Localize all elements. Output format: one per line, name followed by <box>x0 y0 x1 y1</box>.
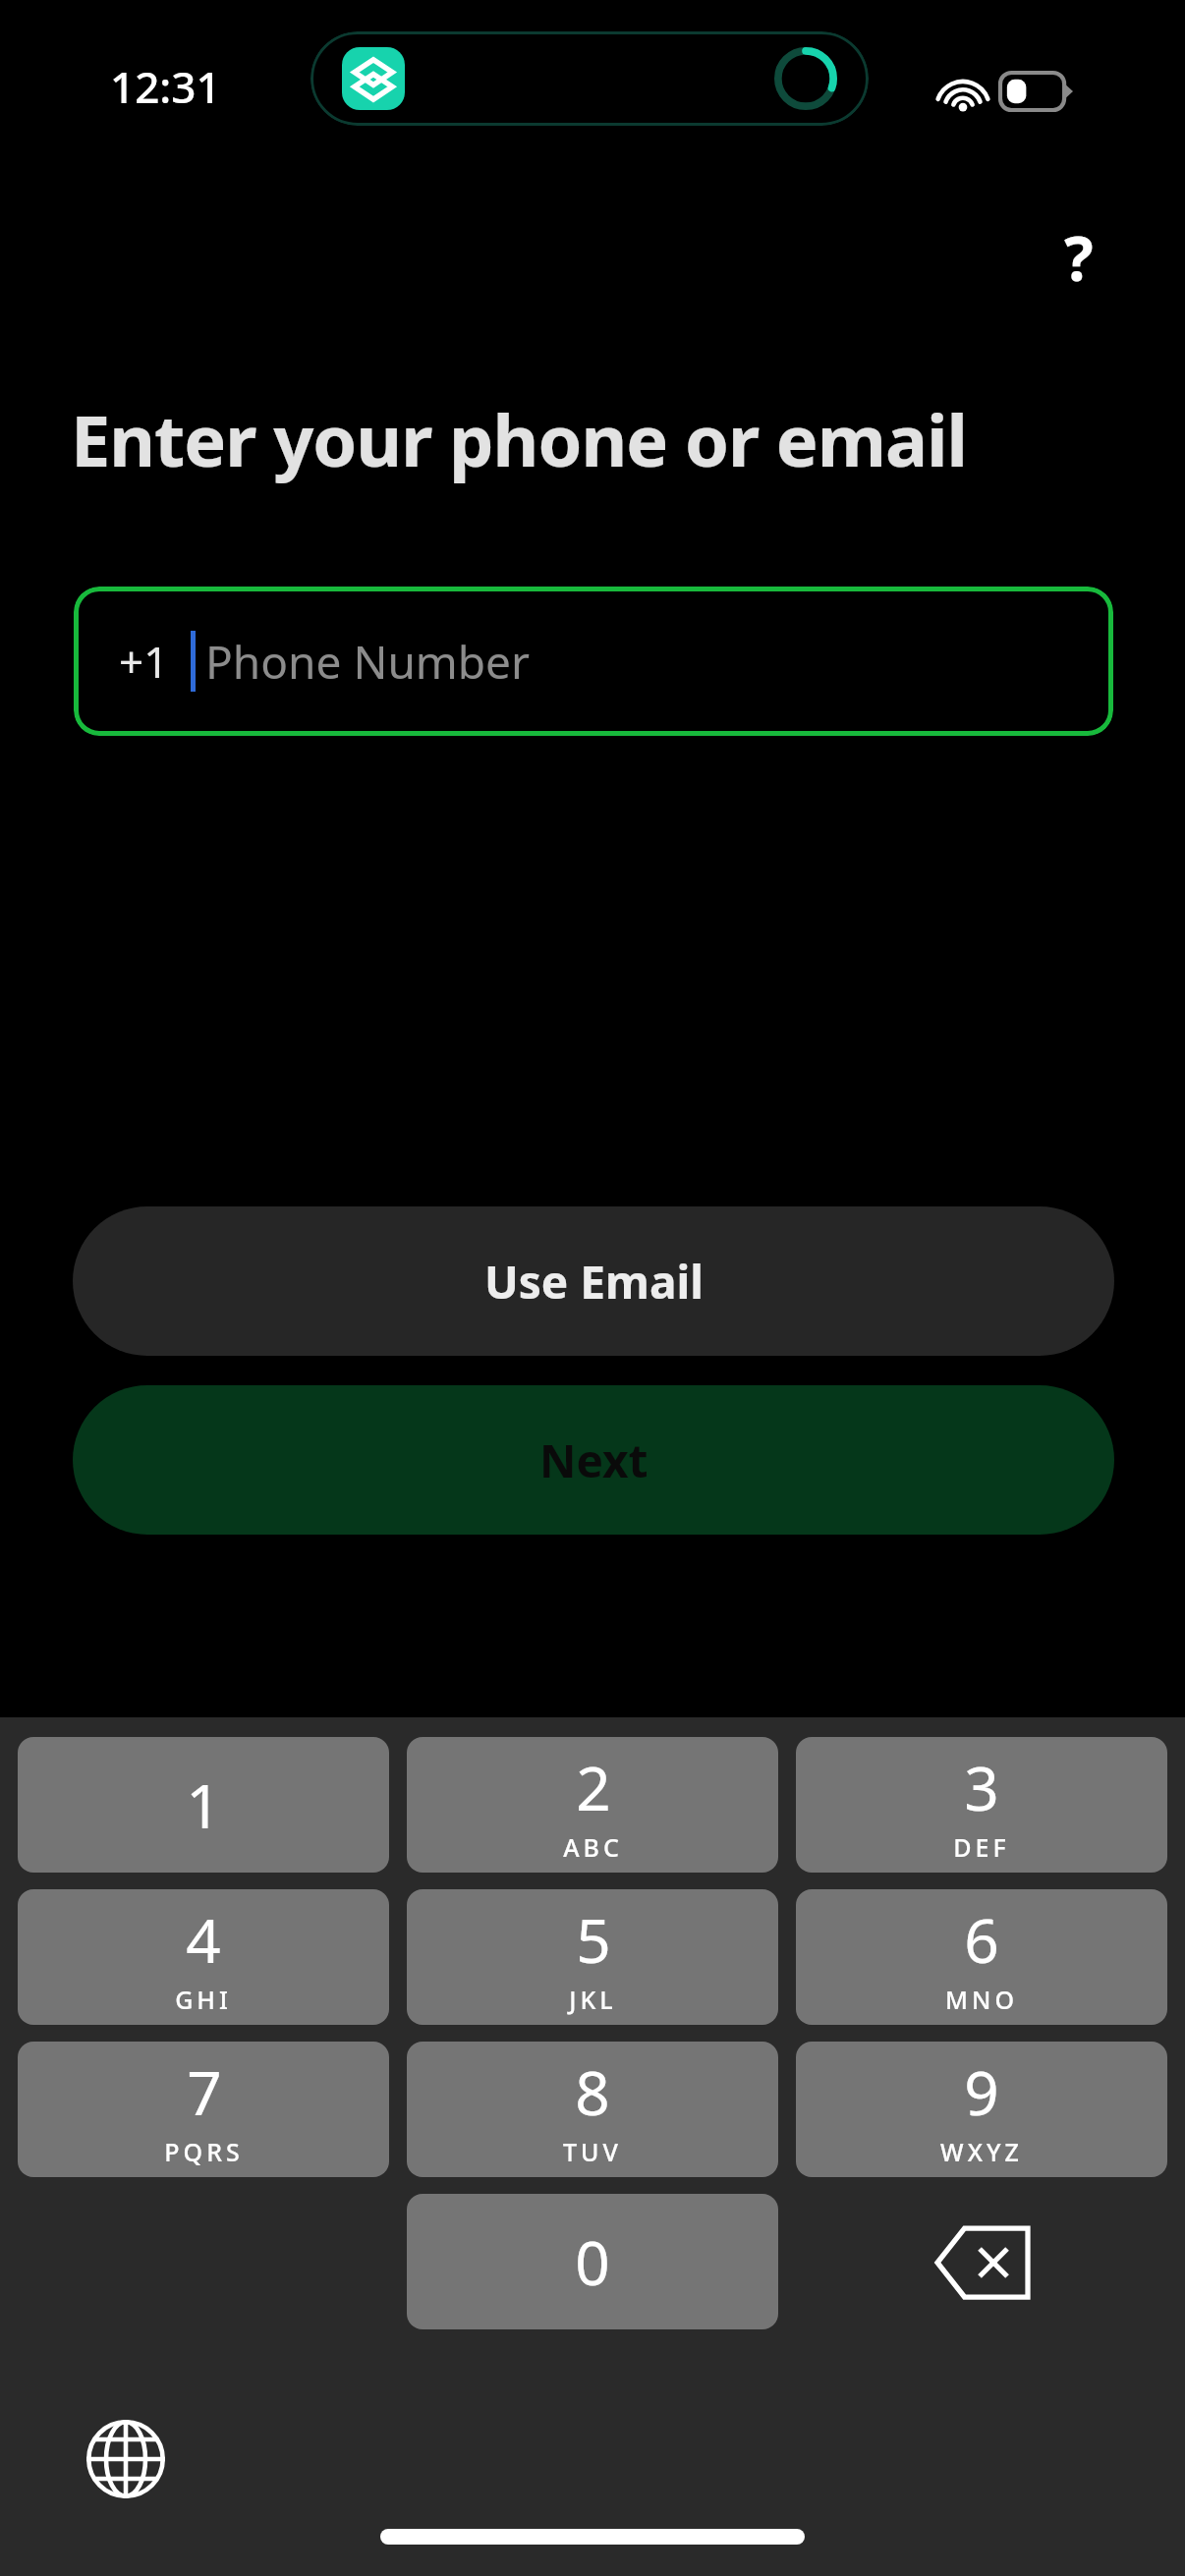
staticText: 2 <box>576 1746 611 1828</box>
button[interactable]: 8 <box>407 2042 778 2177</box>
button[interactable]: Use Email <box>73 1206 1114 1356</box>
button[interactable]: 3 <box>796 1737 1167 1873</box>
staticText: 8 <box>575 2050 610 2133</box>
staticText: 5 <box>576 1898 611 1981</box>
staticText: 7 <box>187 2050 222 2133</box>
button[interactable]: 2 <box>407 1737 778 1873</box>
staticText: DEF <box>953 1830 1010 1864</box>
staticText: ? <box>1064 216 1094 299</box>
staticText: TUV <box>563 2135 622 2168</box>
staticText: Use Email <box>484 1251 704 1313</box>
button[interactable]: 0 <box>407 2194 778 2329</box>
button[interactable]: 9 <box>796 2042 1167 2177</box>
button[interactable]: 7 <box>18 2042 389 2177</box>
staticText: JKL <box>569 1983 617 2016</box>
staticText: 6 <box>964 1898 999 1981</box>
button[interactable]: 6 <box>796 1889 1167 2025</box>
staticText: 3 <box>964 1746 999 1828</box>
staticText: Phone Number <box>205 631 531 693</box>
button[interactable]: 5 <box>407 1889 778 2025</box>
staticText: ABC <box>563 1830 623 1864</box>
staticText: Next <box>539 1429 649 1491</box>
button[interactable]: +1 <box>74 587 1113 736</box>
staticText: GHI <box>175 1983 232 2016</box>
staticText: +1 <box>119 632 169 691</box>
staticText: 4 <box>186 1898 221 1981</box>
staticText: Enter your phone or email <box>71 391 968 487</box>
button[interactable]: Help <box>1028 206 1130 308</box>
button[interactable]: Backspace <box>884 2213 1081 2312</box>
button[interactable]: Next <box>73 1385 1114 1535</box>
staticText: WXYZ <box>940 2135 1023 2168</box>
button[interactable]: 4 <box>18 1889 389 2025</box>
staticText: 1 <box>186 1764 221 1846</box>
button[interactable]: Change keyboard language <box>77 2410 175 2508</box>
button[interactable]: 1 <box>18 1737 389 1873</box>
staticText: PQRS <box>164 2135 244 2168</box>
staticText: 9 <box>964 2050 999 2133</box>
staticText: 0 <box>575 2220 610 2303</box>
staticText: 12:31 <box>110 57 221 116</box>
staticText: MNO <box>945 1983 1018 2016</box>
